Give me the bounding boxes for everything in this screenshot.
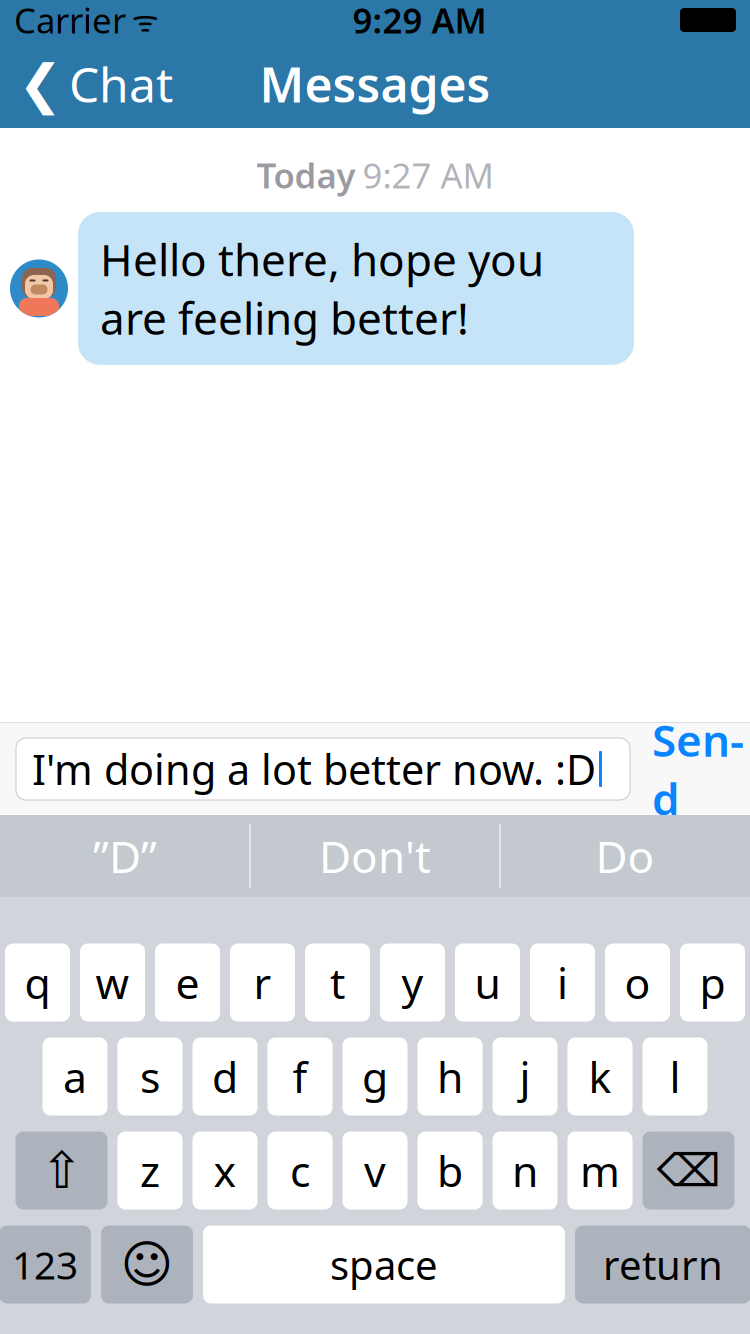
staticText: v [364,1142,386,1199]
button[interactable]: w [80,943,145,1021]
staticText: p [699,954,725,1011]
staticText: 123 [12,1239,78,1290]
button[interactable]: x [192,1131,257,1209]
staticText: l [669,1048,680,1105]
staticText: Hello there, hope you are feeling better… [100,230,544,347]
staticText: Carrier [14,0,126,43]
staticText: ”D” [93,827,157,885]
staticText: Messages [259,52,490,116]
staticText: r [253,954,271,1011]
staticText: 9:29 AM [352,0,486,43]
staticText: s [140,1048,160,1105]
button[interactable]: n [492,1131,557,1209]
button[interactable]: k [567,1037,632,1115]
button[interactable]: space [203,1225,565,1303]
button[interactable]: Do [501,815,749,897]
staticText: Don't [319,827,431,885]
staticText: d [212,1048,238,1105]
button[interactable]: r [230,943,295,1021]
staticText: o [624,954,650,1011]
button[interactable]: g [342,1037,407,1115]
button[interactable]: a [42,1037,107,1115]
button[interactable]: v [342,1131,407,1209]
staticText: e [175,954,199,1011]
staticText: ❮ [18,54,63,114]
staticText: h [437,1048,463,1105]
button[interactable]: p [680,943,745,1021]
button[interactable]: y [380,943,445,1021]
button[interactable]: o [605,943,670,1021]
button[interactable]: z [117,1131,182,1209]
button[interactable]: i [530,943,595,1021]
staticText: g [362,1048,388,1105]
button[interactable]: u [455,943,520,1021]
staticText: t [330,954,345,1011]
staticText: Chat [69,52,173,116]
staticText: n [512,1142,538,1199]
staticText: c [290,1142,310,1199]
button[interactable]: Delete [642,1131,734,1209]
button[interactable]: ❮ [0,40,191,128]
staticText: Today [256,152,355,198]
button[interactable]: d [192,1037,257,1115]
button[interactable]: ”D” [1,815,249,897]
button[interactable]: Don't [251,815,499,897]
button[interactable]: q [5,943,70,1021]
staticText: x [213,1142,236,1199]
staticText: return [603,1238,723,1291]
staticText: m [580,1142,620,1199]
staticText: w [95,954,129,1011]
staticText: q [24,954,50,1011]
staticText: i [557,954,568,1011]
staticText: u [474,954,500,1011]
button[interactable]: m [567,1131,632,1209]
button[interactable]: return [575,1225,750,1303]
button[interactable]: t [305,943,370,1021]
staticText: f [292,1048,307,1105]
button[interactable]: f [267,1037,332,1115]
staticText: Send [652,711,744,827]
button[interactable]: Send [646,738,750,800]
button[interactable]: l [642,1037,707,1115]
staticText: ⌫ [656,1145,720,1196]
button[interactable]: c [267,1131,332,1209]
button[interactable]: e [155,943,220,1021]
staticText: 9:27 AM [362,152,493,198]
button[interactable]: Shift [15,1131,107,1209]
button[interactable]: 123 [0,1225,91,1303]
button[interactable]: s [117,1037,182,1115]
staticText: j [519,1048,530,1105]
button[interactable]: I'm doing a lot better now. :D [16,738,630,800]
staticText: ᯤ [132,0,159,39]
staticText: space [330,1238,438,1291]
button[interactable]: j [492,1037,557,1115]
staticText: ☺ [120,1236,173,1293]
staticText: I'm doing a lot better now. :D [32,742,596,796]
staticText: k [588,1048,611,1105]
button[interactable]: h [417,1037,482,1115]
staticText: y [401,954,423,1011]
button[interactable]: Emoji [101,1225,193,1303]
staticText: b [437,1142,463,1199]
staticText: Do [595,827,654,885]
staticText: a [63,1048,87,1105]
staticText: ⇧ [40,1142,82,1199]
staticText: z [140,1142,160,1199]
button[interactable]: b [417,1131,482,1209]
